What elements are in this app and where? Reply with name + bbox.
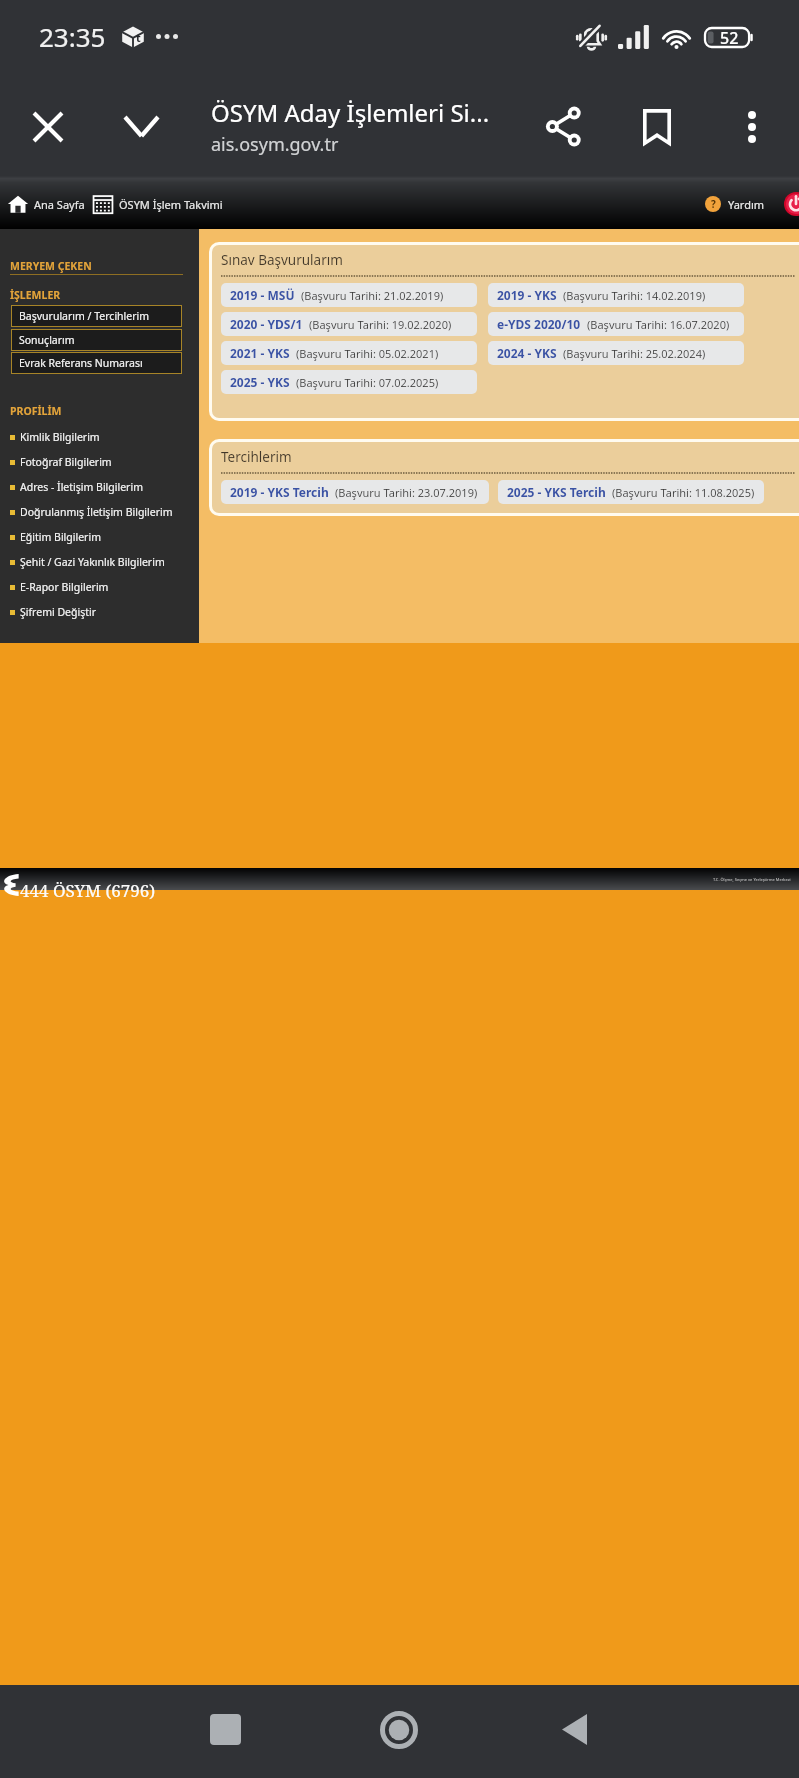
button[interactable]: Şehit / Gazi Yakınlık Bilgilerim (0, 553, 199, 571)
staticText: Eğitim Bilgilerim (20, 530, 101, 544)
button[interactable]: Share (516, 77, 610, 176)
staticText: Şifremi Değiştir (20, 605, 97, 619)
button[interactable]: Home (349, 1685, 449, 1778)
button[interactable]: Logout (784, 192, 799, 216)
button[interactable]: Recent apps (175, 1685, 275, 1778)
staticText: ÖSYM İşlem Takvimi (119, 197, 223, 212)
staticText: 444 ÖSYM (6796) (20, 879, 156, 901)
staticText: (Başvuru Tarihi: 23.07.2019) (335, 485, 478, 500)
button[interactable]: 2025 - YKS Tercih (498, 480, 764, 504)
staticText: (Başvuru Tarihi: 11.08.2025) (612, 485, 755, 500)
staticText: PROFİLİM (10, 404, 62, 418)
staticText: e-YDS 2020/10 (497, 316, 581, 332)
staticText: 2020 - YDS/1 (230, 316, 303, 332)
staticText: (Başvuru Tarihi: 21.02.2019) (301, 288, 444, 303)
button[interactable]: E-Rapor Bilgilerim (0, 578, 199, 596)
button[interactable]: Fotoğraf Bilgilerim (0, 453, 199, 471)
button[interactable]: Sonuçlarım (11, 329, 182, 351)
staticText: 2021 - YKS (230, 345, 290, 361)
staticText: 52 (720, 27, 739, 48)
staticText: 2024 - YKS (497, 345, 557, 361)
staticText: t (136, 30, 141, 45)
staticText: İŞLEMLER (10, 288, 61, 302)
button[interactable]: Bookmark (610, 77, 704, 176)
staticText: Sonuçlarım (19, 333, 75, 347)
staticText: 2019 - YKS Tercih (230, 484, 329, 500)
staticText: Yardım (728, 197, 765, 212)
staticText: (Başvuru Tarihi: 14.02.2019) (563, 288, 706, 303)
staticText: 2019 - MSÜ (230, 287, 295, 303)
staticText: Fotoğraf Bilgilerim (20, 455, 112, 469)
button[interactable]: Evrak Referans Numarası (11, 352, 182, 374)
button[interactable]: Close (0, 77, 95, 176)
button[interactable]: 2019 - MSÜ (221, 283, 477, 307)
staticText: ÖSYM Aday İşlemleri Si... (211, 96, 490, 129)
button[interactable]: 2025 - YKS (221, 370, 477, 394)
staticText: ? (711, 197, 716, 211)
staticText: Kimlik Bilgilerim (20, 430, 100, 444)
button[interactable]: 2024 - YKS (488, 341, 744, 365)
button[interactable]: 2020 - YDS/1 (221, 312, 477, 336)
button[interactable]: Ana Sayfa (7, 193, 85, 215)
staticText: T.C. Ölçme, Seçme ve Yerleştirme Merkezi (713, 877, 791, 882)
staticText: (Başvuru Tarihi: 07.02.2025) (296, 375, 439, 390)
button[interactable]: 2019 - YKS Tercih (221, 480, 489, 504)
staticText: 2019 - YKS (497, 287, 557, 303)
button[interactable]: Doğrulanmış İletişim Bilgilerim (0, 503, 199, 521)
staticText: 23:35 (39, 19, 106, 54)
staticText: (Başvuru Tarihi: 16.07.2020) (587, 317, 730, 332)
staticText: Ana Sayfa (34, 197, 85, 212)
staticText: Evrak Referans Numarası (19, 356, 143, 370)
button[interactable]: ? (705, 196, 765, 212)
staticText: Tercihlerim (221, 448, 292, 466)
button[interactable]: Collapse (94, 77, 189, 176)
staticText: (Başvuru Tarihi: 05.02.2021) (296, 346, 439, 361)
button[interactable]: 2021 - YKS (221, 341, 477, 365)
button[interactable]: More options (705, 77, 799, 176)
staticText: Adres - İletişim Bilgilerim (20, 480, 143, 494)
button[interactable]: Adres - İletişim Bilgilerim (0, 478, 199, 496)
button[interactable]: Eğitim Bilgilerim (0, 528, 199, 546)
staticText: 2025 - YKS (230, 374, 290, 390)
button[interactable]: Kimlik Bilgilerim (0, 428, 199, 446)
staticText: ais.osym.gov.tr (211, 132, 339, 157)
button[interactable]: Başvurularım / Tercihlerim (11, 305, 182, 327)
staticText: Başvurularım / Tercihlerim (19, 309, 150, 323)
staticText: E-Rapor Bilgilerim (20, 580, 109, 594)
staticText: (Başvuru Tarihi: 25.02.2024) (563, 346, 706, 361)
staticText: Şehit / Gazi Yakınlık Bilgilerim (20, 555, 165, 569)
staticText: MERYEM ÇEKEN (10, 259, 92, 273)
button[interactable]: Şifremi Değiştir (0, 603, 199, 621)
staticText: 2025 - YKS Tercih (507, 484, 606, 500)
button[interactable]: ÖSYM İşlem Takvimi (92, 193, 223, 215)
staticText: Sınav Başvurularım (221, 251, 343, 269)
staticText: (Başvuru Tarihi: 19.02.2020) (309, 317, 452, 332)
staticText: Doğrulanmış İletişim Bilgilerim (20, 505, 173, 519)
button[interactable]: Back (524, 1685, 624, 1778)
button[interactable]: e-YDS 2020/10 (488, 312, 744, 336)
button[interactable]: 2019 - YKS (488, 283, 744, 307)
